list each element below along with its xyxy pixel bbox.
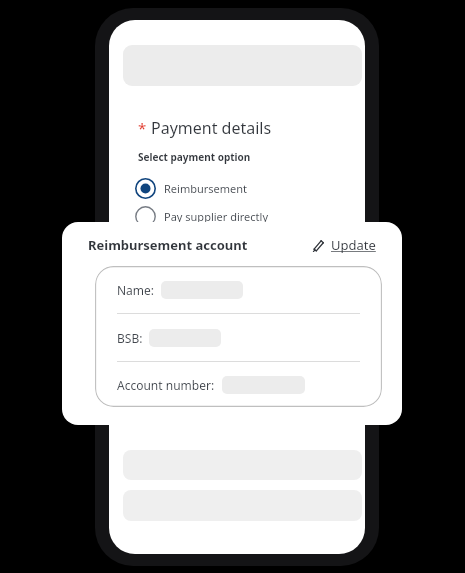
- button[interactable]: Update: [311, 236, 376, 254]
- staticText: *: [138, 118, 147, 138]
- staticText: Reimbursement: [164, 181, 248, 196]
- staticText: Name:: [117, 282, 155, 298]
- staticText: Account number:: [117, 377, 215, 393]
- staticText: Pay supplier directly: [164, 209, 269, 224]
- staticText: BSB:: [117, 330, 143, 346]
- staticText: Update: [331, 236, 376, 254]
- button[interactable]: Pay supplier directly: [135, 203, 269, 229]
- button[interactable]: Reimbursement: [135, 175, 248, 201]
- staticText: Reimbursement account: [88, 236, 248, 254]
- staticText: Payment details: [151, 117, 272, 139]
- other: Update: [311, 238, 325, 252]
- staticText: Select payment option: [138, 150, 251, 164]
